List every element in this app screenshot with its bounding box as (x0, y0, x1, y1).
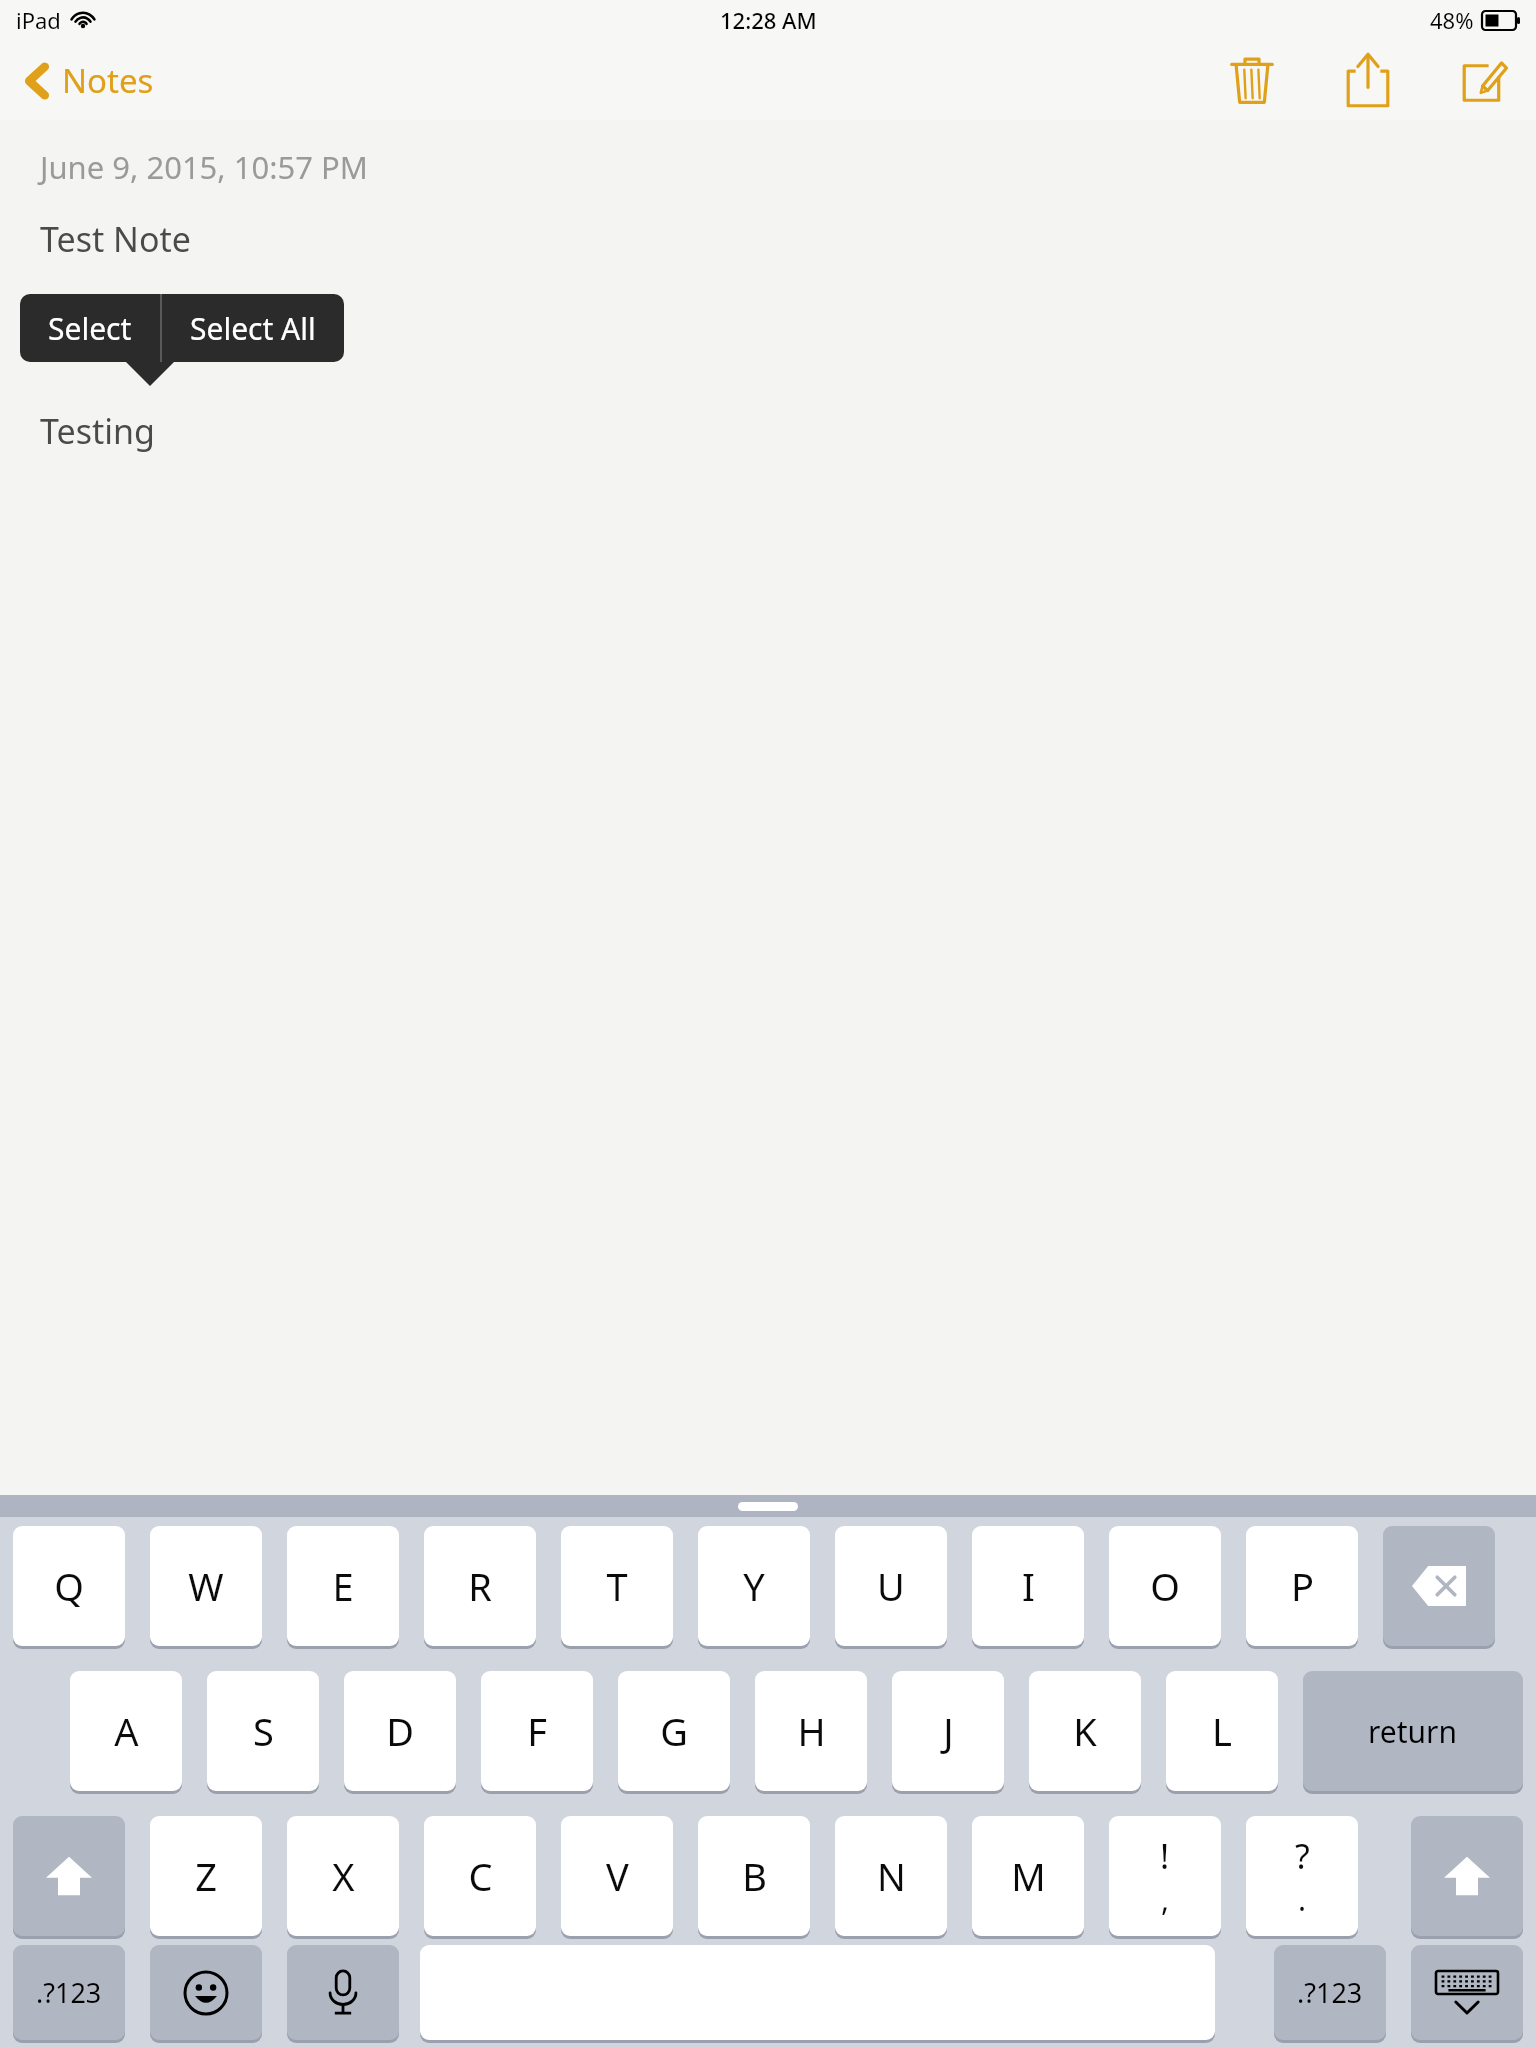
button[interactable]: Hide keyboard (1411, 1945, 1523, 2040)
button[interactable]: Q (13, 1526, 125, 1646)
button[interactable]: S (207, 1671, 319, 1791)
staticText: F (527, 1705, 547, 1757)
button[interactable]: Y (698, 1526, 810, 1646)
button[interactable]: ? (1246, 1816, 1358, 1936)
staticText: K (1073, 1705, 1097, 1757)
button[interactable]: Backspace (1383, 1526, 1495, 1646)
staticText: P (1291, 1560, 1314, 1612)
staticText: .?123 (1297, 1974, 1363, 2011)
button[interactable]: C (424, 1816, 536, 1936)
staticText: N (877, 1850, 906, 1902)
button[interactable]: B (698, 1816, 810, 1936)
staticText: .?123 (36, 1974, 102, 2011)
button[interactable]: Share (1336, 48, 1400, 112)
staticText: , (1161, 1879, 1170, 1920)
button[interactable]: W (150, 1526, 262, 1646)
button[interactable]: Dictation (287, 1945, 399, 2040)
button[interactable]: Select All (162, 294, 344, 362)
button[interactable]: U (835, 1526, 947, 1646)
staticText: Select All (190, 308, 316, 349)
button[interactable]: Select (20, 294, 160, 362)
button[interactable]: G (618, 1671, 730, 1791)
staticText: S (253, 1705, 274, 1757)
staticText: U (877, 1560, 905, 1612)
staticText: Q (54, 1560, 84, 1612)
staticText: C (468, 1850, 493, 1902)
staticText: V (606, 1850, 629, 1902)
staticText: L (1212, 1705, 1232, 1757)
button[interactable]: T (561, 1526, 673, 1646)
button[interactable]: I (972, 1526, 1084, 1646)
staticText: M (1011, 1850, 1046, 1902)
staticText: J (943, 1705, 954, 1757)
staticText: 48% (1430, 5, 1474, 35)
staticText: W (188, 1560, 224, 1612)
staticText: Z (195, 1850, 217, 1902)
staticText: Testing (40, 408, 155, 454)
staticText: Notes (62, 58, 154, 103)
staticText: H (797, 1705, 826, 1757)
button[interactable]: A (70, 1671, 182, 1791)
button[interactable]: Shift (13, 1816, 125, 1936)
staticText: A (114, 1705, 139, 1757)
button[interactable]: F (481, 1671, 593, 1791)
button[interactable]: V (561, 1816, 673, 1936)
staticText: June 9, 2015, 10:57 PM (40, 146, 368, 188)
button[interactable]: N (835, 1816, 947, 1936)
staticText: X (332, 1850, 355, 1902)
staticText: B (742, 1850, 767, 1902)
button[interactable]: Z (150, 1816, 262, 1936)
staticText: return (1368, 1711, 1458, 1752)
staticText: D (386, 1705, 414, 1757)
staticText: T (606, 1560, 628, 1612)
staticText: Select (48, 308, 132, 349)
staticText: Y (743, 1560, 765, 1612)
staticText: Test Note (40, 216, 191, 262)
staticText: ? (1295, 1833, 1310, 1879)
button[interactable]: return (1303, 1671, 1523, 1791)
button[interactable]: R (424, 1526, 536, 1646)
staticText: G (660, 1705, 688, 1757)
button[interactable]: ! (1109, 1816, 1221, 1936)
staticText: 12:28 AM (720, 5, 817, 35)
staticText: ! (1160, 1833, 1170, 1879)
button[interactable]: D (344, 1671, 456, 1791)
button[interactable]: Shift (1411, 1816, 1523, 1936)
button[interactable]: .?123 (13, 1945, 125, 2040)
staticText: E (332, 1560, 354, 1612)
button[interactable]: L (1166, 1671, 1278, 1791)
button[interactable]: X (287, 1816, 399, 1936)
button[interactable]: O (1109, 1526, 1221, 1646)
button[interactable]: K (1029, 1671, 1141, 1791)
button[interactable]: .?123 (1274, 1945, 1386, 2040)
button[interactable]: Compose (1452, 48, 1516, 112)
staticText: O (1150, 1560, 1180, 1612)
staticText: I (1022, 1560, 1035, 1612)
staticText: R (468, 1560, 492, 1612)
staticText: . (1298, 1879, 1307, 1920)
button[interactable]: E (287, 1526, 399, 1646)
button[interactable]: Notes (16, 50, 162, 111)
staticText: iPad (16, 5, 61, 35)
button[interactable]: Delete (1220, 48, 1284, 112)
button[interactable]: P (1246, 1526, 1358, 1646)
button[interactable]: M (972, 1816, 1084, 1936)
button[interactable]: Emoji (150, 1945, 262, 2040)
button[interactable]: J (892, 1671, 1004, 1791)
button[interactable]: H (755, 1671, 867, 1791)
